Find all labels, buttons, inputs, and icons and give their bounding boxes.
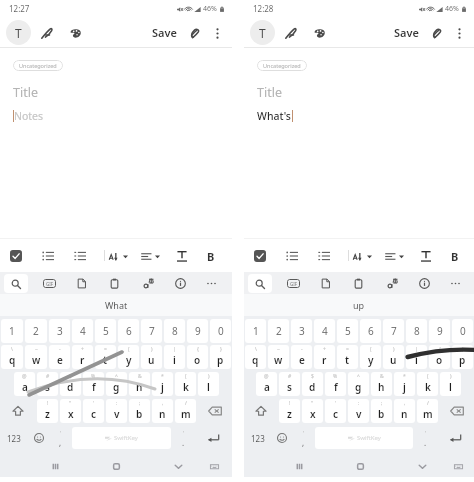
- button[interactable]: 8: [164, 319, 185, 343]
- button[interactable]: Format option: [198, 243, 224, 269]
- button[interactable]: Show keyboard: [203, 455, 225, 477]
- button[interactable]: What: [93, 296, 140, 314]
- button[interactable]: Format option: [442, 243, 468, 269]
- button[interactable]: Emoji: [28, 427, 49, 449]
- button[interactable]: Format option: [349, 243, 375, 269]
- button[interactable]: Shift: [0, 399, 36, 423]
- button[interactable]: |: [164, 345, 185, 369]
- button[interactable]: 0: [452, 319, 473, 343]
- button[interactable]: 2: [25, 319, 47, 343]
- button[interactable]: Translate: [382, 273, 402, 293]
- button[interactable]: =: [337, 345, 358, 369]
- button[interactable]: 3: [291, 319, 312, 343]
- button[interactable]: Back: [411, 455, 433, 477]
- button[interactable]: ;: [129, 399, 150, 423]
- button[interactable]: 9: [187, 319, 208, 343]
- button[interactable]: Text mode: [250, 20, 275, 45]
- button[interactable]: Format option: [35, 243, 61, 269]
- button[interactable]: Clipboard: [348, 273, 368, 293]
- button[interactable]: ': [83, 399, 104, 423]
- button[interactable]: Save: [149, 21, 180, 44]
- button[interactable]: *: [152, 372, 173, 396]
- button[interactable]: ~: [268, 345, 289, 369]
- button[interactable]: Search: [248, 274, 272, 293]
- button[interactable]: Space: [315, 427, 413, 449]
- button[interactable]: 5: [95, 319, 116, 343]
- button[interactable]: %: [325, 372, 346, 396]
- button[interactable]: Space: [72, 427, 171, 449]
- button[interactable]: up: [341, 296, 377, 314]
- button[interactable]: (: [175, 372, 196, 396]
- button[interactable]: ): [141, 345, 162, 369]
- button[interactable]: |: [406, 345, 427, 369]
- button[interactable]: Format option: [67, 243, 93, 269]
- button[interactable]: Info: [170, 273, 190, 293]
- button[interactable]: Translate: [138, 273, 158, 293]
- button[interactable]: &: [129, 372, 150, 396]
- button[interactable]: Shift: [244, 399, 278, 423]
- button[interactable]: Emoji: [271, 427, 292, 449]
- button[interactable]: /: [417, 399, 438, 423]
- button[interactable]: ^: [106, 372, 127, 396]
- button[interactable]: }: [210, 345, 231, 369]
- button[interactable]: Stickers: [71, 273, 91, 293]
- button[interactable]: Uncategorized: [263, 60, 301, 71]
- button[interactable]: @: [256, 372, 277, 396]
- button[interactable]: (: [360, 345, 381, 369]
- button[interactable]: :: [348, 399, 369, 423]
- button[interactable]: (: [417, 372, 438, 396]
- button[interactable]: :: [106, 399, 127, 423]
- button[interactable]: $: [60, 372, 81, 396]
- button[interactable]: Info: [414, 273, 434, 293]
- button[interactable]: Format option: [169, 243, 195, 269]
- button[interactable]: 4: [72, 319, 93, 343]
- button[interactable]: ^: [348, 372, 369, 396]
- button[interactable]: (: [118, 345, 139, 369]
- button[interactable]: 8: [406, 319, 427, 343]
- button[interactable]: Clipboard: [104, 273, 124, 293]
- button[interactable]: #: [37, 372, 58, 396]
- button[interactable]: Handwriting: [37, 23, 57, 43]
- button[interactable]: ": [302, 399, 323, 423]
- button[interactable]: !: [37, 399, 58, 423]
- button[interactable]: Enter: [194, 427, 232, 449]
- button[interactable]: Backspace: [439, 399, 474, 423]
- button[interactable]: More options: [207, 23, 227, 43]
- button[interactable]: 123: [0, 427, 28, 449]
- button[interactable]: }: [452, 345, 473, 369]
- button[interactable]: ;: [371, 399, 392, 423]
- button[interactable]: ,: [394, 399, 415, 423]
- button[interactable]: Period: [172, 427, 194, 449]
- button[interactable]: Save: [391, 21, 422, 44]
- button[interactable]: ': [325, 399, 346, 423]
- button[interactable]: %: [83, 372, 104, 396]
- button[interactable]: +: [314, 345, 335, 369]
- button[interactable]: !: [279, 399, 300, 423]
- button[interactable]: Drawing: [65, 23, 85, 43]
- button[interactable]: #: [279, 372, 300, 396]
- button[interactable]: 123: [244, 427, 271, 449]
- button[interactable]: {: [187, 345, 208, 369]
- button[interactable]: ): [383, 345, 404, 369]
- button[interactable]: =: [95, 345, 116, 369]
- button[interactable]: 3: [49, 319, 70, 343]
- button[interactable]: 1: [1, 319, 23, 343]
- button[interactable]: Show keyboard: [447, 455, 469, 477]
- button[interactable]: Text mode: [6, 20, 31, 45]
- button[interactable]: Handwriting: [281, 23, 301, 43]
- button[interactable]: Format option: [381, 243, 407, 269]
- button[interactable]: &: [371, 372, 392, 396]
- button[interactable]: Drawing: [309, 23, 329, 43]
- button[interactable]: $: [302, 372, 323, 396]
- button[interactable]: *: [394, 372, 415, 396]
- button[interactable]: Comma: [49, 427, 71, 449]
- button[interactable]: Search: [4, 274, 28, 293]
- button[interactable]: More: [445, 273, 465, 293]
- button[interactable]: Comma: [292, 427, 314, 449]
- button[interactable]: {: [429, 345, 450, 369]
- button[interactable]: Period: [414, 427, 436, 449]
- button[interactable]: 1: [245, 319, 266, 343]
- button[interactable]: Home: [349, 455, 371, 477]
- button[interactable]: 7: [383, 319, 404, 343]
- button[interactable]: Format option: [105, 243, 131, 269]
